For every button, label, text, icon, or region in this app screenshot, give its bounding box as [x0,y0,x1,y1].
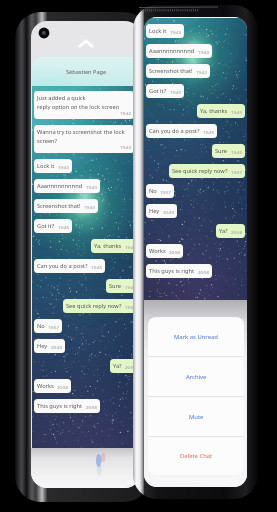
staticText: This guys is right [37,402,83,410]
staticText: 20:58 [231,229,242,235]
staticText: Delete Chat [180,452,213,460]
button[interactable]: Hey [34,339,65,353]
button[interactable]: Ya? [216,224,245,238]
button[interactable]: See quick reply now? [63,299,139,313]
staticText: Ya, thanks [94,242,122,250]
staticText: 19:57 [231,169,242,175]
staticText: Can you do a post? [37,262,88,270]
staticText: 19:43 [170,29,181,35]
button[interactable]: Ya, thanks [197,104,245,118]
button[interactable]: Can you do a post? [34,259,105,273]
staticText: Mark as Unread [174,333,218,341]
button[interactable]: Works [146,244,183,258]
staticText: Hey [149,207,160,215]
staticText: 19:43 [120,144,131,150]
staticText: 19:45 [91,264,102,270]
staticText: Lock it [149,27,167,35]
button[interactable]: Delete Chat [148,437,244,475]
button[interactable]: No [146,184,174,198]
staticText: Mute [189,413,204,421]
button[interactable]: Archive [148,357,244,397]
staticText: 19:45 [125,284,136,290]
staticText: 20:58 [86,404,97,410]
staticText: Just added a quick reply option on the l… [37,94,120,110]
button[interactable]: Hey [146,204,177,218]
button[interactable]: Sure [212,144,245,158]
staticText: Ya, thanks [200,107,228,115]
staticText: 20:58 [198,269,209,275]
button[interactable]: This guys is right [34,399,100,413]
button[interactable]: Got it? [34,219,72,233]
staticText: 19:45 [203,129,214,135]
staticText: 20:49 [163,209,174,215]
staticText: Can you do a post? [149,127,200,135]
staticText: Sure [215,147,228,155]
button[interactable]: Sure [106,279,139,293]
staticText: Works [149,247,166,255]
staticText: 19:57 [48,324,59,330]
button[interactable]: Screenshot that! [34,199,98,213]
staticText: Ya? [219,227,228,235]
staticText: Hey [37,342,48,350]
button[interactable]: Aaannnnnnnnnd [146,44,212,58]
staticText: See quick reply now? [66,302,122,310]
staticText: 19:57 [125,304,136,310]
staticText: Aaannnnnnnnnd [37,182,83,190]
button[interactable]: Aaannnnnnnnnd [34,179,100,193]
staticText: Ya? [113,362,122,370]
staticText: 19:57 [160,189,171,195]
staticText: Got it? [37,222,55,230]
button[interactable]: See quick reply now? [169,164,245,178]
staticText: 19:45 [125,244,136,250]
button[interactable]: Collapse [77,38,95,50]
button[interactable]: Just added a quick reply option on the l… [34,91,134,119]
button[interactable]: No [34,319,62,333]
button[interactable]: Got it? [146,84,184,98]
button[interactable]: Wanna try to screenshot the lock screen? [146,17,240,18]
button[interactable]: Mark as Unread [148,317,244,357]
staticText: Screenshot that! [37,202,81,210]
staticText: Got it? [149,87,167,95]
button[interactable]: Works [34,379,71,393]
button[interactable]: Screenshot that! [146,64,210,78]
button[interactable]: Ya, thanks [91,239,139,253]
staticText: 20:58 [169,249,180,255]
button[interactable]: This guys is right [146,264,212,278]
staticText: 19:45 [231,149,242,155]
staticText: 19:43 [86,184,97,190]
staticText: 19:43 [84,204,95,210]
staticText: Wanna try to screenshot the lock screen? [37,128,125,144]
button[interactable]: Can you do a post? [146,124,217,138]
button[interactable]: Lock it [146,24,184,38]
staticText: 19:45 [231,109,242,115]
button[interactable]: Wanna try to screenshot the lock screen? [34,125,134,153]
staticText: Works [37,382,54,390]
staticText: This guys is right [149,267,195,275]
staticText: 19:42 [120,110,131,116]
staticText: Sébastien Page [66,68,107,76]
staticText: 20:58 [57,384,68,390]
staticText: 19:43 [198,49,209,55]
button[interactable]: Ya? [110,359,139,373]
staticText: Aaannnnnnnnnd [149,47,195,55]
button[interactable]: Mute [148,397,244,437]
staticText: 19:43 [58,164,69,170]
staticText: 20:58 [125,364,136,370]
staticText: No [149,187,157,195]
button[interactable]: Lock it [34,159,72,173]
staticText: See quick reply now? [172,167,228,175]
staticText: Archive [186,373,207,381]
staticText: Lock it [37,162,55,170]
staticText: 20:49 [51,344,62,350]
staticText: 19:45 [170,89,181,95]
staticText: 19:45 [58,224,69,230]
staticText: No [37,322,45,330]
staticText: 19:43 [196,69,207,75]
staticText: Sure [109,282,122,290]
staticText: Screenshot that! [149,67,193,75]
